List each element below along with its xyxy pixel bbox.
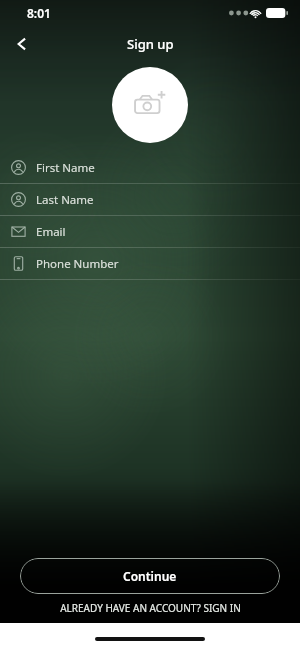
button[interactable]: Phone Number: [0, 248, 300, 280]
staticText: Phone Number: [36, 256, 119, 272]
staticText: Last Name: [36, 192, 94, 208]
staticText: Continue: [123, 568, 177, 584]
staticText: Email: [36, 224, 66, 240]
button[interactable]: ALREADY HAVE AN ACCOUNT? SIGN IN: [0, 601, 300, 615]
staticText: Sign up: [127, 35, 174, 53]
button[interactable]: Continue: [20, 558, 280, 594]
button[interactable]: Last Name: [0, 184, 300, 216]
staticText: 8:01: [27, 5, 51, 21]
button[interactable]: Add profile photo: [112, 67, 188, 143]
staticText: ALREADY HAVE AN ACCOUNT? SIGN IN: [60, 601, 241, 615]
button[interactable]: First Name: [0, 152, 300, 184]
button[interactable]: Back: [0, 26, 44, 62]
staticText: First Name: [36, 160, 95, 176]
button[interactable]: Email: [0, 216, 300, 248]
